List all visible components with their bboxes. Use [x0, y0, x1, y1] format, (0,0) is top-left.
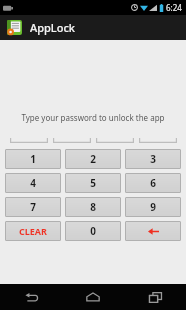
staticText: 6:24	[166, 2, 182, 13]
staticText: 9	[150, 200, 156, 214]
button[interactable]	[53, 134, 91, 143]
staticText: 6	[150, 176, 156, 190]
button[interactable]: 8	[65, 197, 121, 217]
staticText: 4	[30, 176, 36, 190]
button[interactable]: 2	[65, 149, 121, 169]
staticText: 0	[90, 224, 96, 238]
button[interactable]: 3	[125, 149, 181, 169]
button[interactable]: 9	[125, 197, 181, 217]
button[interactable]: CLEAR	[5, 221, 61, 241]
button[interactable]: 7	[5, 197, 61, 217]
button[interactable]	[139, 134, 177, 143]
other: AppLock icon	[6, 19, 23, 36]
button[interactable]: Back	[0, 284, 62, 310]
button[interactable]: 5	[65, 173, 121, 193]
button[interactable]: 0	[65, 221, 121, 241]
staticText: AppLock	[30, 20, 75, 35]
button[interactable]: Recent apps	[124, 284, 186, 310]
staticText: 7	[30, 200, 36, 214]
staticText: 8	[90, 200, 96, 214]
button[interactable]	[10, 134, 48, 143]
button[interactable]: 1	[5, 149, 61, 169]
staticText: 1	[30, 152, 36, 166]
button[interactable]: Backspace	[125, 221, 181, 241]
button[interactable]: 4	[5, 173, 61, 193]
staticText: 2	[90, 152, 96, 166]
staticText: 5	[90, 176, 96, 190]
button[interactable]: Home	[62, 284, 124, 310]
button[interactable]	[96, 134, 134, 143]
staticText: 3	[150, 152, 156, 166]
button[interactable]: 6	[125, 173, 181, 193]
staticText: Type your password to unlock the app	[21, 112, 165, 123]
staticText: CLEAR	[19, 225, 47, 237]
